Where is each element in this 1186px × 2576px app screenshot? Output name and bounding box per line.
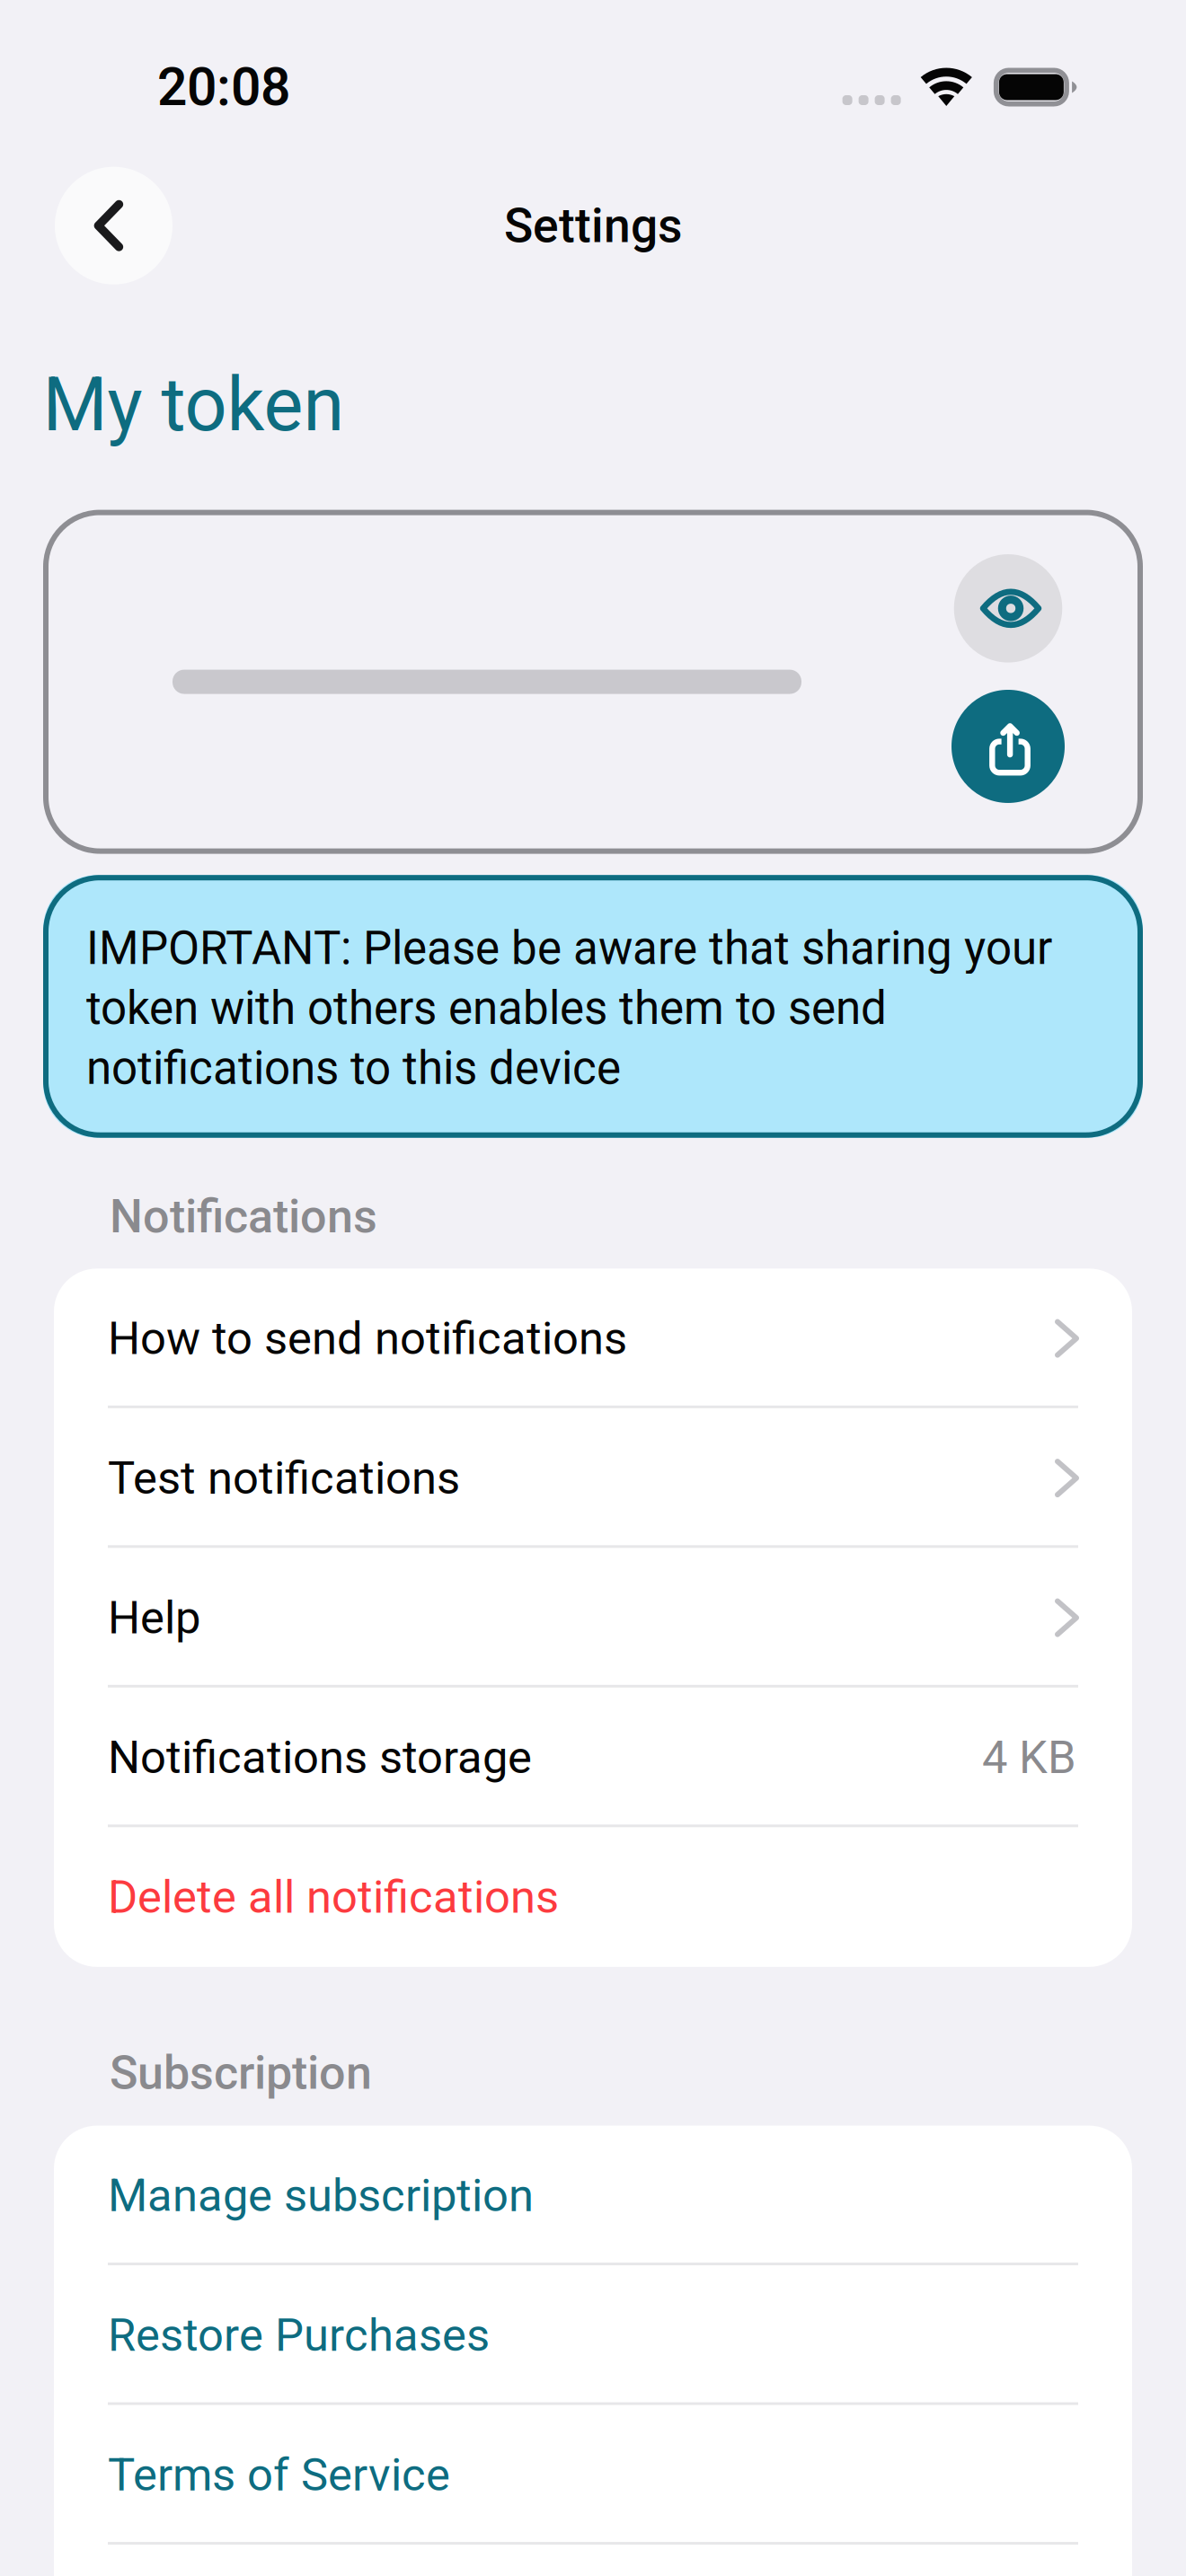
staticText: Help bbox=[108, 1591, 200, 1644]
button[interactable]: Share token bbox=[951, 690, 1065, 803]
button[interactable]: Terms of Service bbox=[54, 2405, 1132, 2545]
staticText: Delete all notifications bbox=[108, 1870, 559, 1924]
staticText: token with others enables them to send bbox=[86, 981, 887, 1035]
button[interactable]: Back bbox=[55, 167, 173, 284]
button[interactable]: Show token bbox=[954, 554, 1062, 663]
staticText: How to send notifications bbox=[108, 1312, 627, 1365]
staticText: IMPORTANT: Please be aware that sharing … bbox=[86, 921, 1052, 975]
button[interactable]: Restore Purchases bbox=[54, 2265, 1132, 2405]
staticText: Terms of Service bbox=[108, 2448, 450, 2501]
staticText: notifications to this device bbox=[86, 1041, 621, 1095]
staticText: Subscription bbox=[110, 2045, 372, 2100]
button[interactable]: How to send notifications bbox=[54, 1269, 1132, 1408]
button[interactable]: Manage subscription bbox=[54, 2126, 1132, 2265]
staticText: Notifications bbox=[110, 1189, 377, 1244]
staticText: 20:08 bbox=[157, 56, 290, 118]
staticText: Restore Purchases bbox=[108, 2308, 490, 2362]
staticText: Test notifications bbox=[108, 1451, 460, 1505]
staticText: Notifications storage bbox=[108, 1731, 532, 1784]
staticText: Settings bbox=[504, 198, 682, 254]
staticText: Manage subscription bbox=[108, 2169, 534, 2222]
staticText: 4 KB bbox=[982, 1731, 1076, 1784]
staticText: My token bbox=[43, 361, 345, 448]
button[interactable]: Help bbox=[54, 1548, 1132, 1688]
button[interactable]: Test notifications bbox=[54, 1408, 1132, 1548]
button[interactable]: Delete all notifications bbox=[54, 1827, 1132, 1967]
